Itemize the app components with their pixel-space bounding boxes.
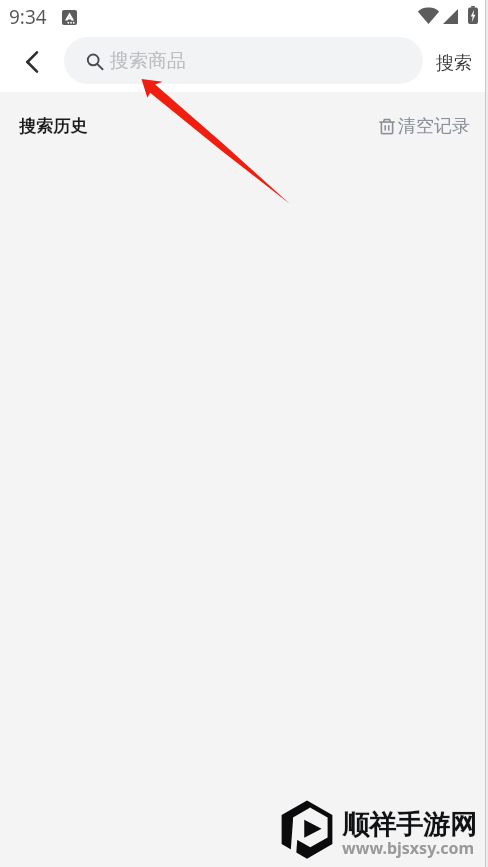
button[interactable]: 搜索商品 — [64, 37, 423, 84]
staticText: www.bjsxsy.com — [342, 837, 474, 859]
button[interactable]: Back — [8, 39, 54, 85]
staticText: 9:34 — [9, 4, 47, 30]
button[interactable]: 清空记录 — [379, 110, 470, 142]
button[interactable]: 搜索 — [426, 40, 482, 87]
staticText: 搜索商品 — [110, 49, 186, 73]
staticText: 清空记录 — [398, 115, 470, 138]
staticText: 搜索 — [436, 52, 472, 75]
staticText: 顺祥手游网 — [342, 808, 477, 842]
staticText: 搜索历史 — [19, 116, 87, 137]
